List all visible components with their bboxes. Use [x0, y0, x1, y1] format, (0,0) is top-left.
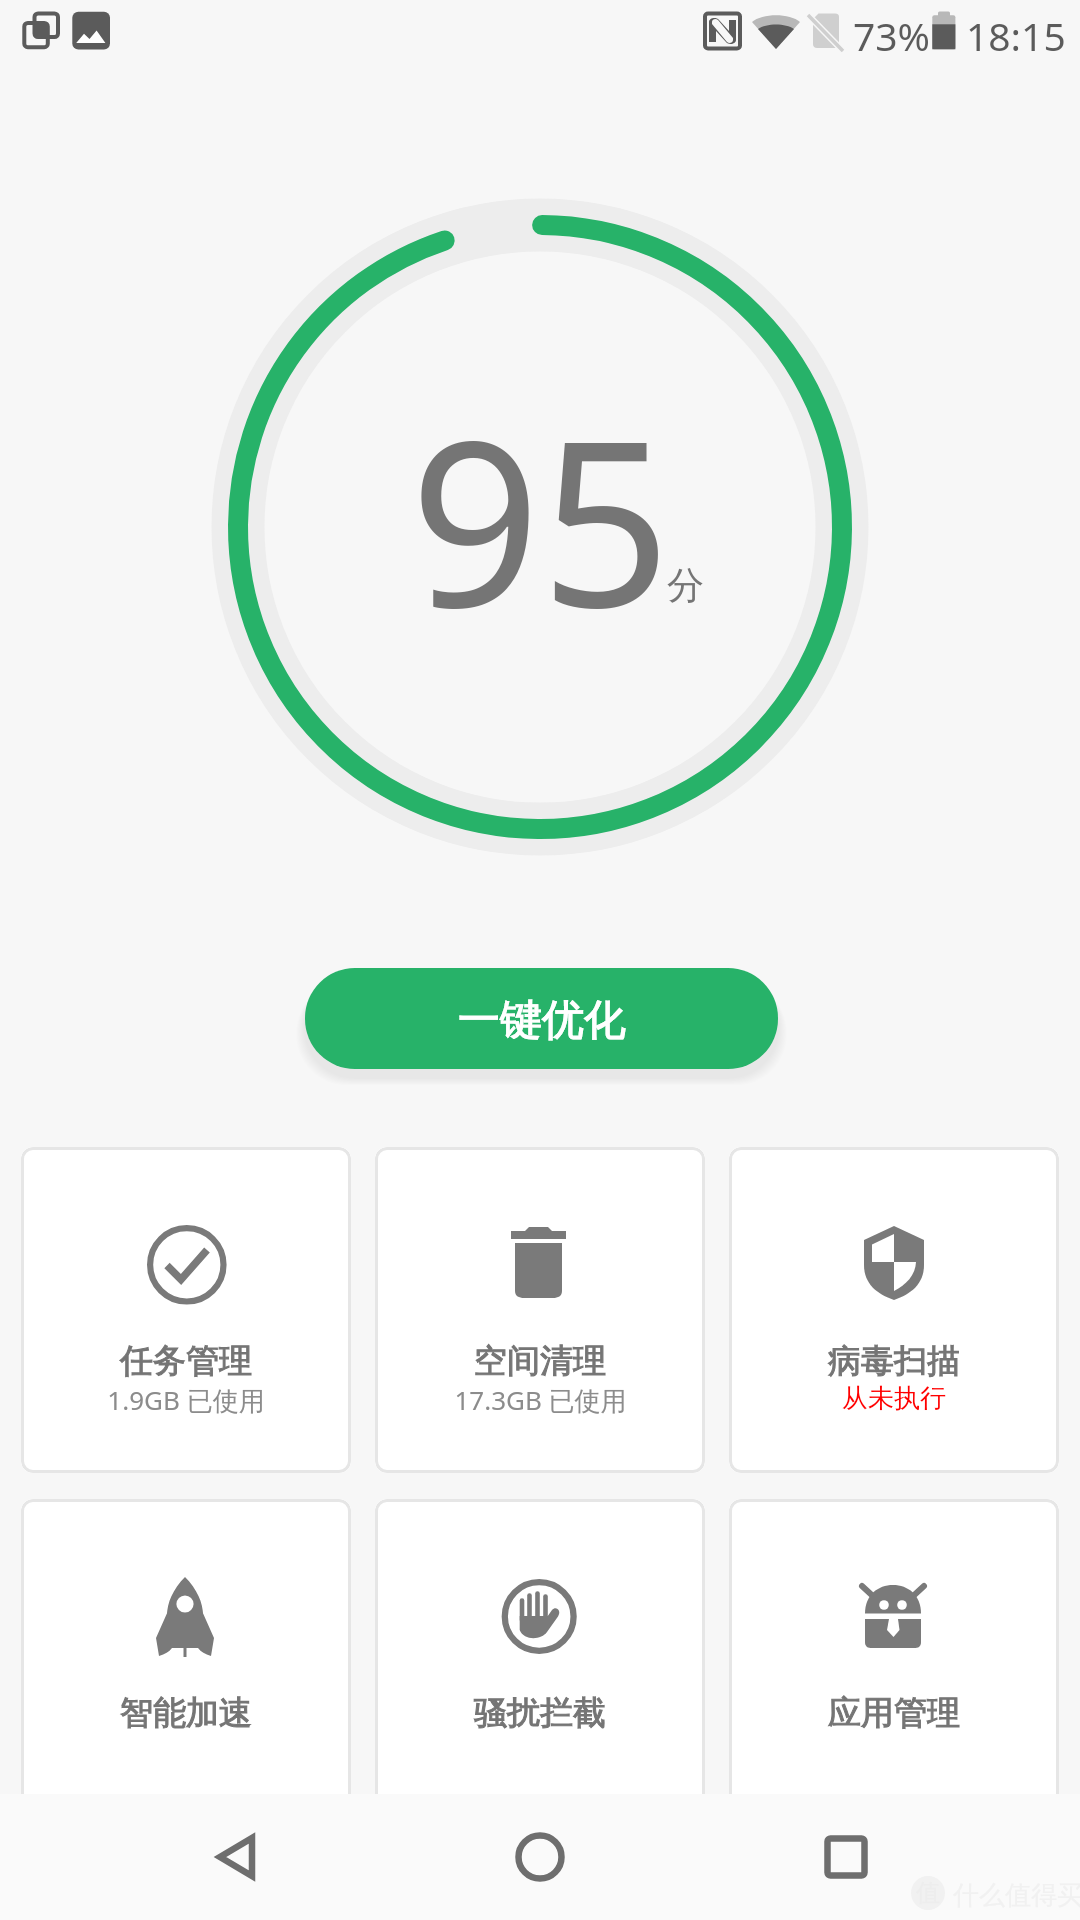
staticText: 95	[410, 363, 671, 674]
button[interactable]: 一键优化	[305, 968, 778, 1069]
staticText: 智能加速	[120, 1692, 252, 1734]
button[interactable]: 骚扰拦截	[375, 1499, 705, 1825]
button[interactable]: Back	[174, 1797, 294, 1917]
staticText: 73%	[853, 9, 931, 62]
button[interactable]: Home	[480, 1797, 600, 1917]
staticText: 任务管理	[120, 1340, 252, 1382]
staticText: 从未执行	[842, 1382, 946, 1415]
staticText: 什么值得买	[953, 1879, 1080, 1912]
staticText: 空间清理	[474, 1340, 606, 1382]
button[interactable]: 智能加速	[21, 1499, 351, 1825]
button[interactable]: 空间清理	[375, 1147, 705, 1473]
staticText: 18:15	[966, 9, 1066, 62]
staticText: 分	[667, 562, 704, 609]
button[interactable]: 病毒扫描	[729, 1147, 1059, 1473]
button[interactable]: 应用管理	[729, 1499, 1059, 1825]
staticText: 17.3GB 已使用	[454, 1382, 627, 1418]
button[interactable]: Recent apps	[786, 1797, 906, 1917]
staticText: 骚扰拦截	[474, 1692, 606, 1734]
staticText: 1.9GB 已使用	[107, 1382, 265, 1418]
staticText: 病毒扫描	[828, 1340, 960, 1382]
button[interactable]: 任务管理	[21, 1147, 351, 1473]
staticText: 应用管理	[828, 1692, 960, 1734]
staticText: 一键优化	[458, 994, 626, 1047]
